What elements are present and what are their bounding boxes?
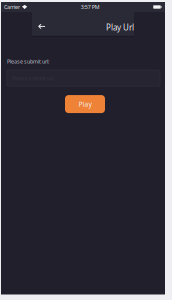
staticText: Please submit url: <box>7 58 49 65</box>
staticText: Carrier <box>4 3 20 11</box>
button[interactable]: Back <box>32 12 53 35</box>
staticText: Play Url <box>106 22 134 33</box>
staticText: Play <box>78 100 91 109</box>
staticText: Please submit url <box>12 74 53 82</box>
staticText: 3:57 PM <box>81 3 100 11</box>
button[interactable]: Play <box>65 95 105 113</box>
